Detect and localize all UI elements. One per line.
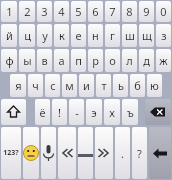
staticText: щ: [142, 28, 152, 43]
button[interactable]: Backspace: [145, 99, 171, 125]
button[interactable]: Shift: [1, 99, 26, 125]
staticText: ?: [137, 146, 142, 161]
button[interactable]: у: [37, 24, 52, 47]
button[interactable]: щ: [139, 24, 154, 47]
button[interactable]: в: [37, 49, 52, 72]
button[interactable]: ъ: [122, 99, 138, 125]
button[interactable]: я: [10, 74, 26, 97]
button[interactable]: 123?: [1, 127, 21, 179]
button[interactable]: -: [69, 99, 84, 125]
button[interactable]: ж: [156, 49, 171, 72]
button[interactable]: к: [54, 24, 69, 47]
button[interactable]: 8: [122, 1, 137, 22]
staticText: р: [92, 53, 99, 68]
button[interactable]: !: [52, 99, 67, 125]
button[interactable]: Enter: [149, 127, 171, 179]
button[interactable]: п: [71, 49, 86, 72]
button[interactable]: ь: [113, 74, 128, 97]
button[interactable]: х: [104, 99, 120, 125]
button[interactable]: й: [1, 24, 17, 47]
staticText: х: [109, 105, 115, 120]
staticText: ь: [118, 78, 124, 93]
button[interactable]: л: [122, 49, 137, 72]
staticText: 8: [126, 4, 133, 19]
staticText: у: [42, 28, 48, 43]
staticText: к: [59, 28, 65, 43]
button[interactable]: з: [156, 24, 171, 47]
staticText: 7: [109, 4, 116, 19]
staticText: н: [92, 28, 99, 43]
staticText: п: [75, 53, 82, 68]
staticText: ж: [159, 53, 168, 68]
button[interactable]: р: [88, 49, 103, 72]
staticText: е: [75, 28, 82, 43]
staticText: э: [91, 105, 97, 120]
button[interactable]: 9: [139, 1, 154, 22]
staticText: й: [6, 28, 13, 43]
staticText: 0: [160, 4, 167, 19]
button[interactable]: 5: [71, 1, 86, 22]
button[interactable]: 7: [105, 1, 120, 22]
button[interactable]: ё: [35, 99, 50, 125]
button[interactable]: б: [130, 74, 145, 97]
button[interactable]: о: [105, 49, 120, 72]
button[interactable]: Emoji: [23, 127, 39, 179]
button[interactable]: г: [105, 24, 120, 47]
button[interactable]: 0: [156, 1, 171, 22]
button[interactable]: .: [115, 127, 130, 179]
button[interactable]: д: [139, 49, 154, 72]
staticText: д: [143, 53, 150, 68]
staticText: ч: [32, 78, 39, 93]
button[interactable]: 3: [37, 1, 52, 22]
button[interactable]: а: [54, 49, 69, 72]
button[interactable]: 4: [54, 1, 69, 22]
staticText: т: [101, 78, 107, 93]
staticText: 1: [6, 4, 13, 19]
staticText: 2: [24, 4, 31, 19]
button[interactable]: с: [45, 74, 60, 97]
staticText: ф: [5, 53, 14, 68]
button[interactable]: ф: [1, 49, 17, 72]
button[interactable]: м: [62, 74, 77, 97]
button[interactable]: Voice input: [41, 127, 56, 179]
button[interactable]: н: [88, 24, 103, 47]
button[interactable]: Previous: [58, 127, 76, 179]
button[interactable]: ?: [132, 127, 147, 179]
button[interactable]: ы: [19, 49, 35, 72]
staticText: !: [58, 105, 61, 120]
staticText: ц: [24, 28, 31, 43]
button[interactable]: Next: [95, 127, 113, 179]
staticText: и: [83, 78, 90, 93]
button[interactable]: э: [86, 99, 102, 125]
button[interactable]: 6: [88, 1, 103, 22]
staticText: 4: [58, 4, 65, 19]
staticText: б: [134, 78, 141, 93]
staticText: ю: [150, 78, 159, 93]
staticText: в: [41, 53, 48, 68]
staticText: м: [65, 78, 74, 93]
button[interactable]: е: [71, 24, 86, 47]
staticText: л: [126, 53, 133, 68]
button[interactable]: и: [79, 74, 94, 97]
button[interactable]: 1: [1, 1, 17, 22]
staticText: ъ: [127, 105, 134, 120]
staticText: -: [75, 105, 79, 120]
staticText: ш: [125, 28, 135, 43]
button[interactable]: Space: [78, 127, 93, 179]
button[interactable]: ш: [122, 24, 137, 47]
button[interactable]: ц: [19, 24, 35, 47]
button[interactable]: ч: [28, 74, 43, 97]
staticText: я: [15, 78, 22, 93]
staticText: а: [58, 53, 65, 68]
staticText: с: [50, 78, 56, 93]
staticText: ё: [39, 105, 46, 120]
staticText: о: [109, 53, 116, 68]
staticText: .: [121, 146, 124, 161]
button[interactable]: т: [96, 74, 111, 97]
button[interactable]: 2: [19, 1, 35, 22]
staticText: 6: [92, 4, 99, 19]
staticText: з: [161, 28, 167, 43]
staticText: 9: [143, 4, 150, 19]
staticText: 3: [41, 4, 48, 19]
button[interactable]: ю: [147, 74, 162, 97]
